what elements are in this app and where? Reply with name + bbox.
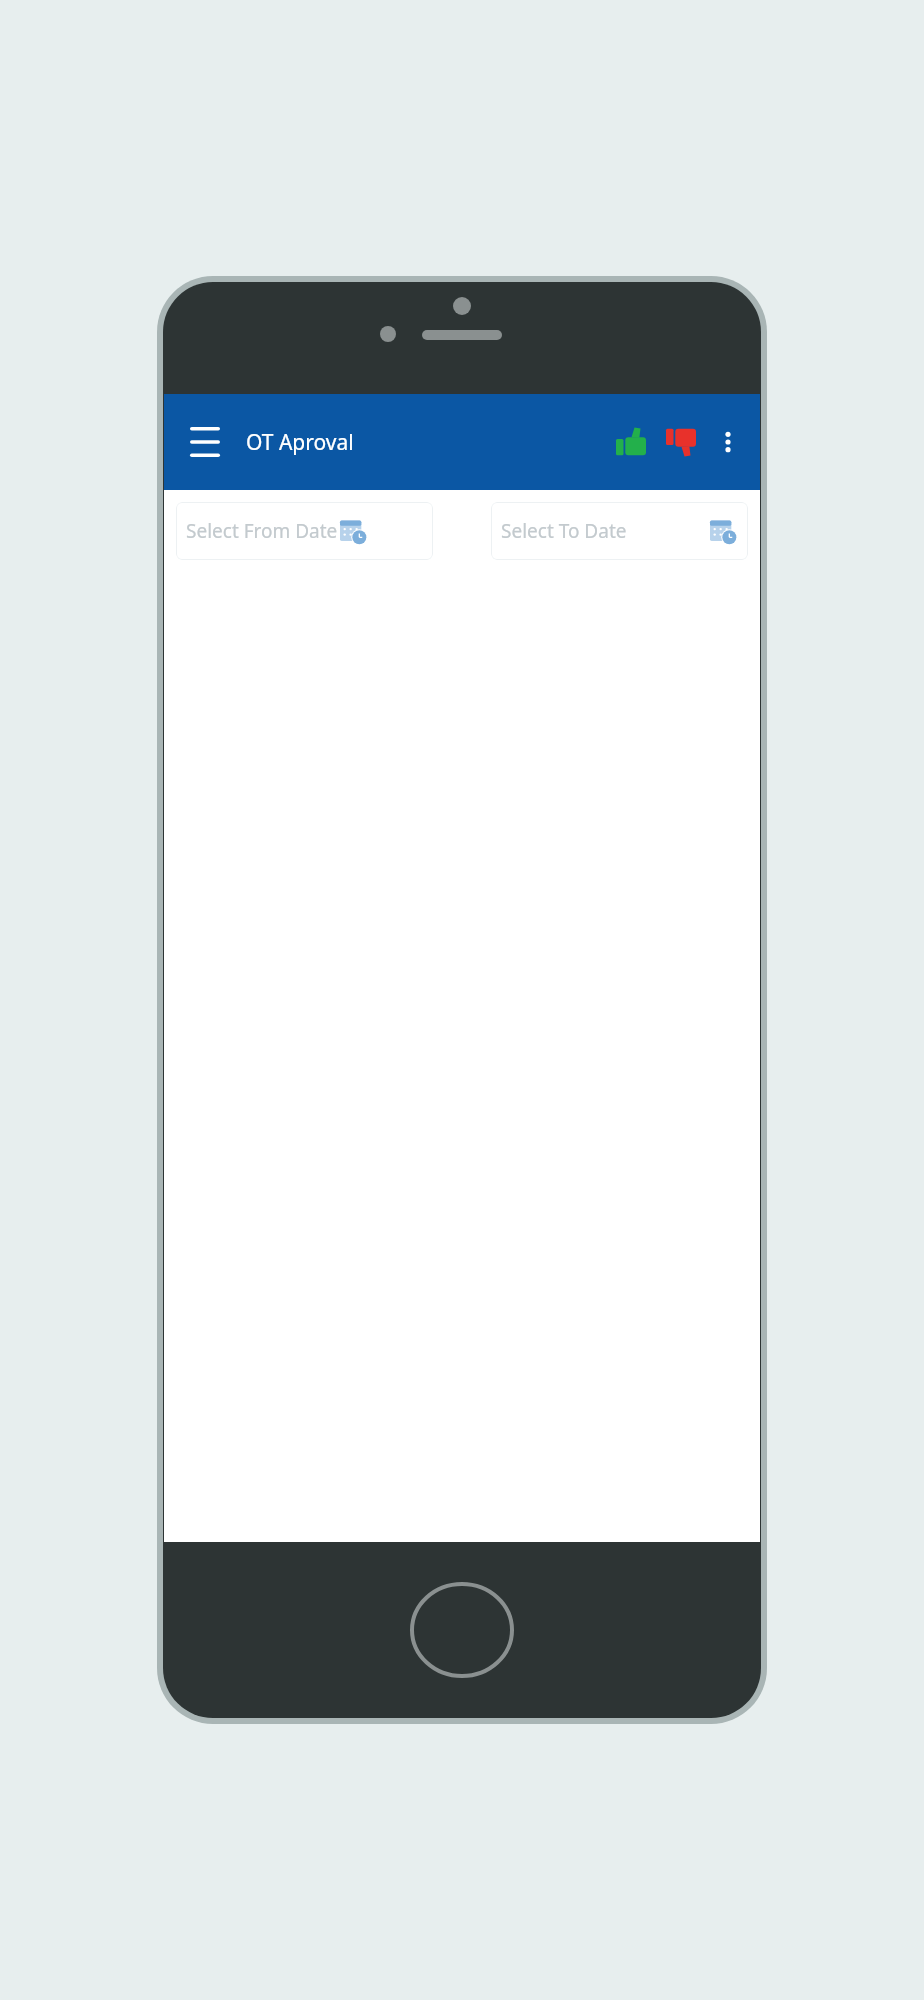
button[interactable]: Open navigation menu — [178, 415, 232, 469]
staticText: Select To Date — [501, 518, 627, 544]
staticText: Select From Date — [186, 518, 338, 544]
button[interactable]: Select From Date — [176, 502, 433, 560]
button[interactable]: Approve — [608, 419, 654, 465]
button[interactable]: Reject — [658, 419, 704, 465]
button[interactable]: Select To Date — [491, 502, 748, 560]
button[interactable]: Home — [410, 1578, 514, 1682]
staticText: OT Aproval — [246, 428, 354, 457]
button[interactable]: More options — [706, 420, 750, 464]
